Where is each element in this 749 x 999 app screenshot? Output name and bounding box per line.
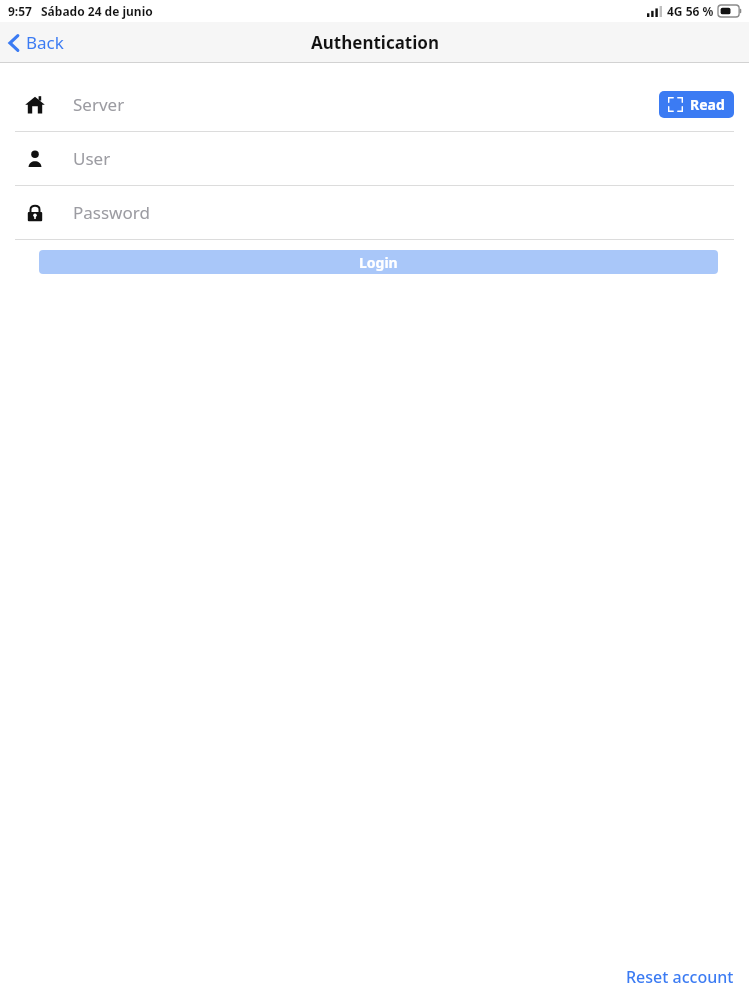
button[interactable]: Back [0,27,74,58]
staticText: Server [73,93,125,116]
staticText: User [73,147,111,170]
button[interactable]: Server [0,78,749,131]
button[interactable]: Reset account [622,961,738,993]
staticText: Sábado 24 de junio [41,3,153,19]
staticText: Back [26,31,64,54]
button[interactable]: User [0,132,749,185]
button[interactable]: Scan QR code [659,91,734,118]
button[interactable]: Password [0,186,749,239]
staticText: Read [690,95,725,114]
staticText: Login [359,253,398,272]
staticText: 4G 56 % [667,3,714,19]
staticText: 9:57 [8,3,32,19]
staticText: Authentication [311,31,439,54]
button[interactable]: Login [39,250,718,274]
staticText: Password [73,201,150,224]
other: Scan QR code [668,97,683,112]
staticText: Reset account [626,966,734,988]
